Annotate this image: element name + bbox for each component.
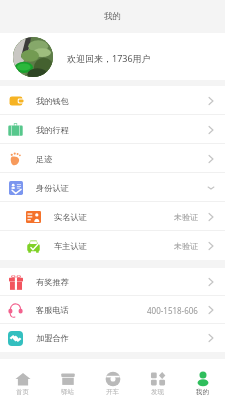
button[interactable]: 有奖推荐 xyxy=(0,268,225,296)
button[interactable]: 车主认证 xyxy=(0,231,225,260)
button[interactable]: 首页 xyxy=(0,371,45,400)
button[interactable]: 身份认证 xyxy=(0,173,225,202)
staticText: 400-1518-606 xyxy=(147,305,198,316)
staticText: 足迹 xyxy=(36,154,53,164)
button[interactable]: 发现 xyxy=(135,371,180,400)
button[interactable]: 驿站 xyxy=(45,371,90,400)
button[interactable]: 加盟合作 xyxy=(0,324,225,352)
button[interactable]: 实名认证 xyxy=(0,202,225,231)
staticText: 身份认证 xyxy=(36,183,69,193)
staticText: 我的 xyxy=(104,11,121,22)
staticText: 实名认证 xyxy=(54,212,87,222)
staticText: 我的行程 xyxy=(36,125,69,135)
button[interactable]: 开车 xyxy=(90,371,135,400)
staticText: 驿站 xyxy=(61,388,74,396)
staticText: 有奖推荐 xyxy=(36,277,69,287)
button[interactable]: 足迹 xyxy=(0,144,225,173)
button[interactable]: 我的钱包 xyxy=(0,86,225,115)
button[interactable]: 客服电话 xyxy=(0,296,225,324)
button[interactable]: 我的行程 xyxy=(0,115,225,144)
staticText: 首页 xyxy=(16,388,29,396)
button[interactable]: 我的 xyxy=(180,371,225,400)
staticText: 开车 xyxy=(106,388,119,396)
staticText: 未验证 xyxy=(174,212,198,222)
staticText: 我的钱包 xyxy=(36,96,69,106)
staticText: 欢迎回来，1736用户 xyxy=(67,52,151,64)
button[interactable]: 欢迎回来，1736用户 xyxy=(0,33,225,80)
staticText: 加盟合作 xyxy=(36,333,69,343)
staticText: 客服电话 xyxy=(36,305,69,315)
staticText: 我的 xyxy=(196,388,209,396)
staticText: 未验证 xyxy=(174,241,198,251)
staticText: 车主认证 xyxy=(54,241,87,251)
staticText: 发现 xyxy=(151,388,164,396)
